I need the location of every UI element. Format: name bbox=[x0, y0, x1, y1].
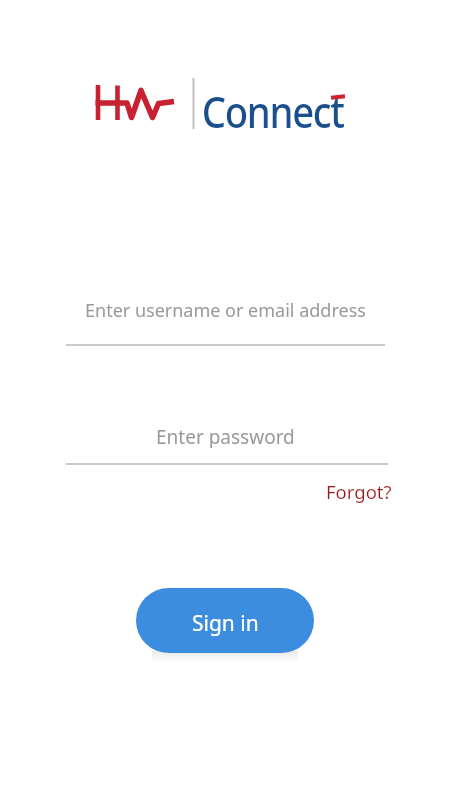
staticText: Enter password bbox=[156, 424, 295, 448]
button[interactable]: Sign in bbox=[136, 588, 314, 653]
button[interactable]: Enter username or email address bbox=[0, 298, 450, 322]
button[interactable]: Enter password bbox=[0, 424, 450, 448]
staticText: Connect bbox=[202, 81, 344, 141]
staticText: Enter username or email address bbox=[85, 298, 366, 322]
button[interactable]: Forgot? bbox=[326, 479, 392, 503]
staticText: Sign in bbox=[192, 609, 259, 638]
staticText: Forgot? bbox=[326, 479, 392, 503]
